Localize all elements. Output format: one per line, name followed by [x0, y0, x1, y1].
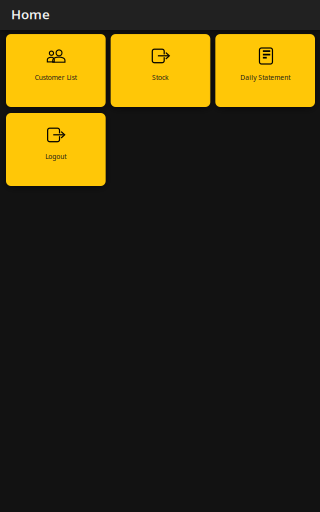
staticText: Daily Statement [240, 73, 290, 82]
button[interactable]: Stock [111, 34, 210, 107]
staticText: Home [11, 5, 50, 23]
staticText: Logout [45, 152, 66, 161]
button[interactable]: Daily Statement [215, 34, 315, 107]
button[interactable]: Logout [6, 113, 106, 186]
button[interactable]: Customer List [6, 34, 106, 107]
staticText: Stock [152, 73, 169, 82]
staticText: Customer List [35, 73, 77, 82]
